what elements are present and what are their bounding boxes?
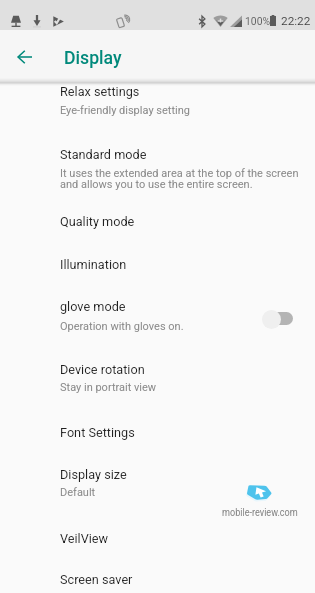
- staticText: Display size: [60, 467, 127, 482]
- button[interactable]: Back: [8, 41, 40, 73]
- button[interactable]: Screen saver: [0, 564, 315, 593]
- staticText: Operation with gloves on.: [60, 320, 184, 333]
- staticText: Quality mode: [60, 214, 135, 229]
- staticText: Relax settings: [60, 84, 140, 99]
- staticText: Standard mode: [60, 147, 147, 162]
- button[interactable]: Quality mode: [0, 206, 315, 236]
- button[interactable]: Relax settings: [0, 76, 315, 113]
- staticText: Font Settings: [60, 425, 135, 440]
- button[interactable]: VeilView: [0, 523, 315, 553]
- button[interactable]: [262, 310, 292, 329]
- button[interactable]: Display size: [0, 459, 315, 496]
- staticText: Eye-friendly display setting: [60, 104, 190, 117]
- staticText: Device rotation: [60, 362, 145, 377]
- button[interactable]: Font Settings: [0, 417, 315, 447]
- staticText: VeilView: [60, 531, 109, 546]
- staticText: Screen saver: [60, 572, 133, 587]
- button[interactable]: glove mode: [0, 291, 315, 328]
- button[interactable]: Standard mode: [0, 139, 315, 187]
- staticText: Display: [64, 46, 122, 69]
- staticText: and allows you to use the entire screen.: [60, 178, 253, 191]
- staticText: glove mode: [60, 299, 126, 314]
- staticText: Illumination: [60, 257, 127, 272]
- button[interactable]: Device rotation: [0, 354, 315, 391]
- staticText: 100%: [245, 15, 271, 27]
- staticText: Stay in portrait view: [60, 381, 157, 394]
- staticText: Default: [60, 486, 96, 499]
- button[interactable]: Illumination: [0, 249, 315, 279]
- staticText: 22:22: [281, 14, 311, 28]
- staticText: mobile-review.com: [222, 505, 298, 518]
- staticText: It uses the extended area at the top of …: [60, 167, 299, 180]
